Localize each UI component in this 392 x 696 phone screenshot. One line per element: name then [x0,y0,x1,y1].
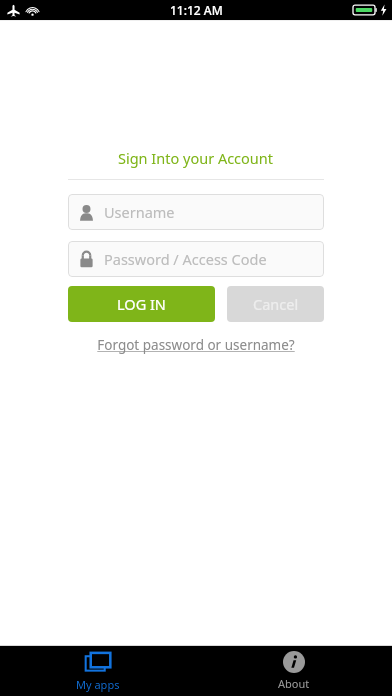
button[interactable]: My apps [58,647,138,695]
staticText: 11:12 AM [170,2,223,18]
staticText: About [278,676,310,691]
button[interactable]: Cancel [227,286,324,322]
staticText: Sign Into your Account [118,148,274,168]
staticText: Forgot password or username? [97,336,295,354]
staticText: Password / Access Code [104,249,267,269]
button[interactable]: LOG IN [68,286,215,322]
button[interactable]: Forgot password or username? [93,334,299,356]
button[interactable]: About [260,648,328,694]
staticText: Cancel [253,294,299,314]
button[interactable]: Password / Access Code [68,241,324,277]
staticText: Username [104,202,175,222]
button[interactable]: Username [68,194,324,230]
staticText: LOG IN [117,294,166,314]
staticText: My apps [76,677,120,692]
